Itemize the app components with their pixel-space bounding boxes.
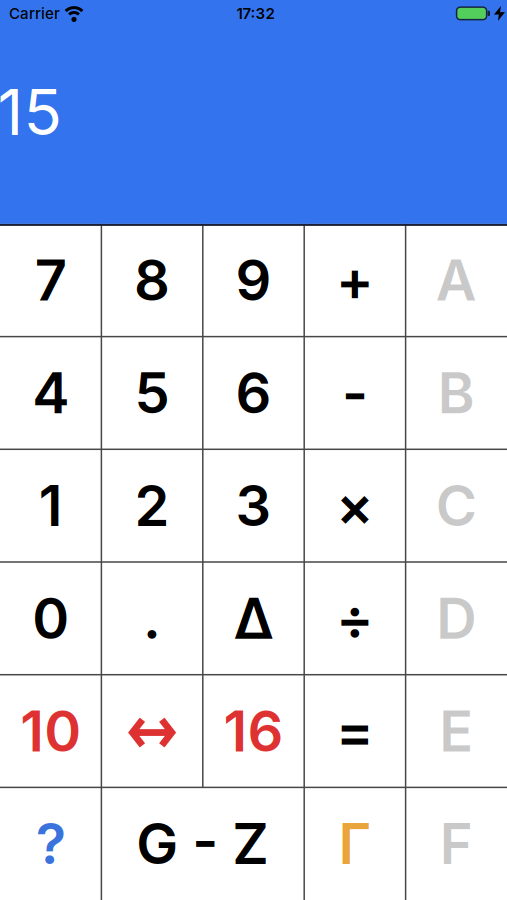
staticText: 8 [134,246,170,314]
staticText: ? [36,810,66,878]
button[interactable]: C [406,449,507,562]
staticText: B [438,359,475,427]
staticText: 15 [0,74,62,150]
staticText: 4 [32,359,69,427]
button[interactable]: G - Z [101,787,304,900]
button[interactable]: E [406,675,507,787]
staticText: = [336,697,374,765]
staticText: Carrier [9,4,60,22]
button[interactable]: 10 [0,675,101,787]
staticText: D [436,584,476,652]
staticText: E [439,697,473,765]
button[interactable]: ÷ [304,562,406,675]
button[interactable]: 9 [203,224,304,337]
button[interactable]: 8 [101,224,203,337]
button[interactable]: × [304,449,406,562]
staticText: Δ [233,584,273,652]
button[interactable]: = [304,675,406,787]
button[interactable]: . [101,562,203,675]
button[interactable]: Δ [203,562,304,675]
button[interactable]: + [304,224,406,337]
staticText: 1 [39,472,63,540]
staticText: 0 [32,584,69,652]
button[interactable]: ? [0,787,101,900]
staticText: - [342,359,368,427]
button[interactable]: 7 [0,224,101,337]
staticText: A [436,246,477,314]
staticText: × [336,472,374,540]
button[interactable]: 2 [101,449,203,562]
staticText: 5 [135,359,170,427]
staticText: 17:32 [236,4,274,22]
button[interactable]: F [406,787,507,900]
staticText: 10 [20,697,81,765]
button[interactable]: A [406,224,507,337]
staticText: C [436,472,477,540]
staticText: + [336,246,374,314]
staticText: G - Z [136,810,269,878]
button[interactable]: 16 [203,675,304,787]
staticText: F [440,810,473,878]
button[interactable]: 6 [203,337,304,449]
staticText: 3 [235,472,271,540]
button[interactable]: D [406,562,507,675]
button[interactable]: 4 [0,337,101,449]
button[interactable]: 3 [203,449,304,562]
staticText: 7 [35,246,67,314]
button[interactable]: 5 [101,337,203,449]
button[interactable]: B [406,337,507,449]
staticText: 2 [135,472,170,540]
staticText: . [143,584,161,652]
staticText: 6 [235,359,271,427]
staticText: Γ [338,810,371,878]
staticText: ÷ [336,584,374,652]
button[interactable]: 0 [0,562,101,675]
button[interactable]: - [304,337,406,449]
button[interactable]: Γ [304,787,406,900]
button[interactable] [101,675,203,787]
staticText: 16 [223,697,283,765]
staticText: 9 [235,246,271,314]
button[interactable]: 1 [0,449,101,562]
